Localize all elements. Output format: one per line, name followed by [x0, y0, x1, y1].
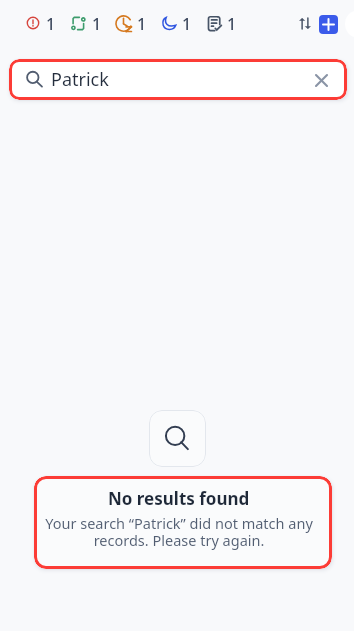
button[interactable]: Profile	[345, 10, 354, 38]
button[interactable]: Sleeping	[162, 13, 192, 33]
staticText: No results found	[108, 487, 250, 510]
button[interactable]: Sort	[294, 13, 315, 34]
staticText: 1	[46, 13, 56, 33]
button[interactable]: Tasks	[207, 13, 237, 33]
staticText: 1	[137, 13, 147, 33]
button[interactable]: Patrick	[9, 59, 347, 100]
staticText: 1	[92, 13, 102, 33]
staticText: 1	[227, 13, 237, 33]
staticText: 1	[182, 13, 192, 33]
staticText: Patrick	[51, 67, 109, 92]
button[interactable]: In progress	[71, 13, 102, 33]
button[interactable]: Clear search	[310, 69, 332, 91]
button[interactable]: No results found	[34, 476, 332, 569]
button[interactable]: Add	[319, 15, 338, 34]
staticText: Your search “Patrick” did not match any …	[37, 513, 321, 550]
button[interactable]: Snoozed	[115, 13, 147, 33]
button[interactable]: Errors	[26, 13, 56, 33]
